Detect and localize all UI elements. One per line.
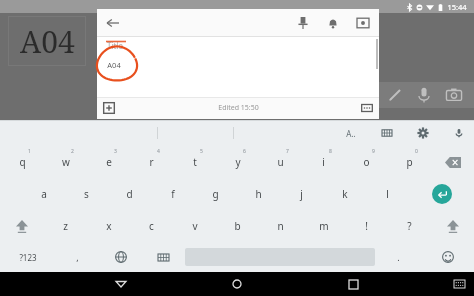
staticText: e xyxy=(106,155,112,169)
button[interactable]: h xyxy=(237,178,280,210)
button[interactable]: Clipboard xyxy=(380,126,394,140)
button[interactable]: Camera xyxy=(445,86,463,104)
staticText: f xyxy=(171,187,175,201)
staticText: c xyxy=(149,219,154,233)
staticText: q xyxy=(19,155,26,169)
button[interactable]: e xyxy=(87,146,130,178)
staticText: . xyxy=(397,251,400,263)
button[interactable]: ? xyxy=(388,210,431,242)
button[interactable]: Draw xyxy=(386,86,404,104)
staticText: 3 xyxy=(114,148,117,155)
button[interactable]: ! xyxy=(345,210,388,242)
button[interactable]: a xyxy=(22,178,65,210)
button[interactable]: Shift xyxy=(431,210,474,242)
button[interactable]: q xyxy=(0,146,44,178)
staticText: 6 xyxy=(243,148,246,155)
button[interactable]: f xyxy=(151,178,194,210)
button[interactable]: w xyxy=(44,146,87,178)
staticText: ? xyxy=(407,219,412,233)
staticText: r xyxy=(149,155,154,169)
staticText: k xyxy=(342,187,348,201)
staticText: h xyxy=(255,187,262,201)
staticText: l xyxy=(386,187,389,201)
button[interactable]: u xyxy=(259,146,302,178)
staticText: u xyxy=(277,155,284,169)
staticText: 8 xyxy=(329,148,332,155)
button[interactable]: t xyxy=(173,146,216,178)
staticText: x xyxy=(106,219,112,233)
staticText: w xyxy=(62,155,70,169)
button[interactable]: Home xyxy=(226,273,248,295)
button[interactable]: m xyxy=(302,210,345,242)
button[interactable]: p xyxy=(388,146,431,178)
button[interactable]: s xyxy=(65,178,108,210)
staticText: p xyxy=(406,155,413,169)
button[interactable]: b xyxy=(216,210,259,242)
staticText: Title xyxy=(107,40,123,51)
staticText: 7 xyxy=(286,148,289,155)
button[interactable]: Pin xyxy=(295,15,311,31)
staticText: A04 xyxy=(107,60,121,70)
button[interactable]: Text editing xyxy=(344,126,358,140)
button[interactable]: n xyxy=(259,210,302,242)
button[interactable]: Backspace xyxy=(431,146,474,178)
staticText: m xyxy=(319,219,329,233)
staticText: 5 xyxy=(200,148,203,155)
button[interactable]: y xyxy=(216,146,259,178)
staticText: a xyxy=(41,187,47,201)
button[interactable]: Back xyxy=(110,273,132,295)
button[interactable]: v xyxy=(173,210,216,242)
staticText: , xyxy=(76,251,79,263)
button[interactable]: g xyxy=(194,178,237,210)
staticText: ?123 xyxy=(19,252,37,263)
staticText: t xyxy=(193,155,197,169)
button[interactable]: x xyxy=(87,210,130,242)
button[interactable]: Keyboard layout xyxy=(142,242,185,272)
staticText: Edited 15:50 xyxy=(218,103,259,113)
button[interactable]: c xyxy=(130,210,173,242)
button[interactable]: , xyxy=(56,242,99,272)
staticText: s xyxy=(84,187,89,201)
button[interactable]: Archive xyxy=(355,15,371,31)
button[interactable]: Enter xyxy=(409,178,474,210)
button[interactable]: j xyxy=(280,178,323,210)
button[interactable]: Add xyxy=(102,101,116,115)
button[interactable]: Voice input xyxy=(452,126,466,140)
staticText: z xyxy=(63,219,68,233)
staticText: A.. xyxy=(346,128,356,139)
button[interactable]: Voice xyxy=(415,86,433,104)
staticText: 2 xyxy=(71,148,74,155)
staticText: n xyxy=(277,219,284,233)
staticText: 4 xyxy=(157,148,160,155)
button[interactable]: i xyxy=(302,146,345,178)
button[interactable]: Switch keyboard xyxy=(452,277,466,291)
button[interactable]: r xyxy=(130,146,173,178)
staticText: i xyxy=(322,155,325,169)
button[interactable]: d xyxy=(108,178,151,210)
staticText: 0 xyxy=(415,148,418,155)
staticText: 9 xyxy=(372,148,375,155)
button[interactable]: Recents xyxy=(342,273,364,295)
button[interactable]: Back xyxy=(103,13,123,33)
button[interactable]: o xyxy=(345,146,388,178)
button[interactable]: Settings xyxy=(416,126,430,140)
button[interactable]: More options xyxy=(360,101,374,115)
button[interactable]: . xyxy=(375,242,422,272)
button[interactable]: Emoji xyxy=(422,242,474,272)
button[interactable]: l xyxy=(366,178,409,210)
button[interactable]: Remind me xyxy=(325,15,341,31)
staticText: d xyxy=(126,187,133,201)
button[interactable]: k xyxy=(323,178,366,210)
button[interactable]: z xyxy=(44,210,87,242)
staticText: j xyxy=(300,187,303,201)
staticText: A04 xyxy=(20,21,75,62)
button[interactable]: Shift xyxy=(0,210,44,242)
staticText: ! xyxy=(365,219,368,233)
staticText: v xyxy=(192,219,198,233)
staticText: 15:44 xyxy=(447,2,467,12)
staticText: 1 xyxy=(28,148,31,155)
staticText: o xyxy=(363,155,370,169)
button[interactable]: ?123 xyxy=(0,242,56,272)
button[interactable]: Change language xyxy=(99,242,142,272)
